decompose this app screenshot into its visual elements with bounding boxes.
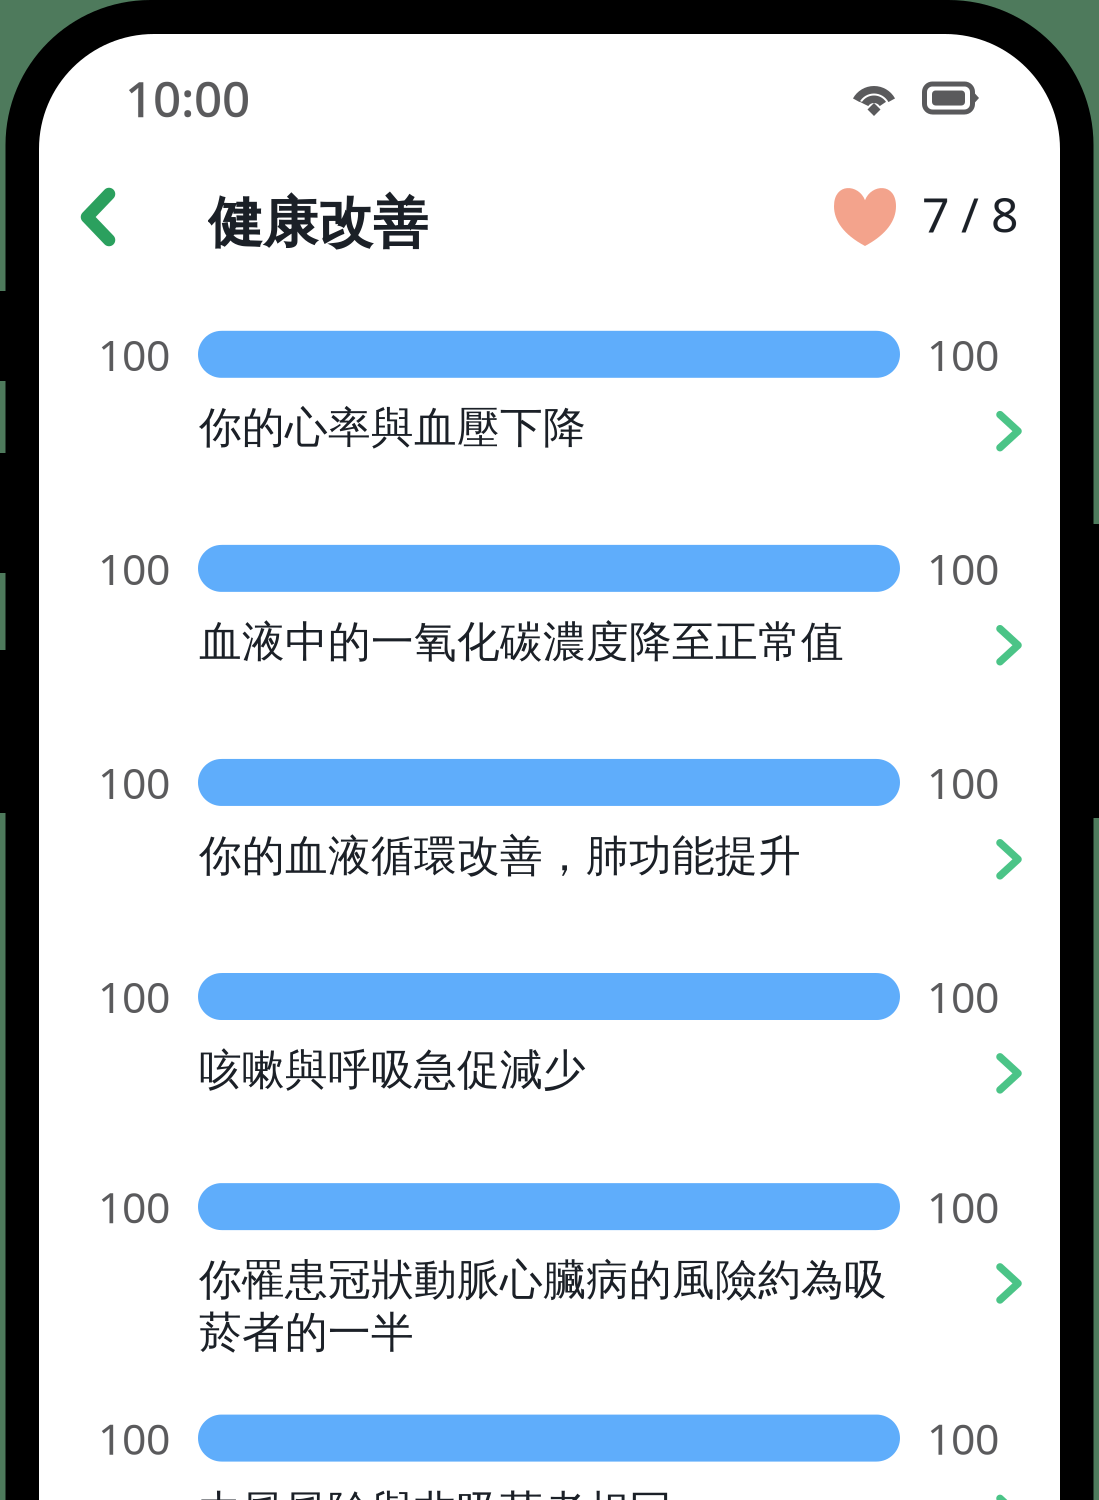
staticText: 100 xyxy=(927,968,999,1025)
staticText: 100 xyxy=(98,326,170,383)
staticText: 你的血液循環改善，肺功能提升 xyxy=(199,830,801,882)
staticText: 100 xyxy=(927,326,999,383)
staticText: 100 xyxy=(98,540,170,597)
staticText: 7 / 8 xyxy=(922,182,1018,246)
staticText: 健康改善 xyxy=(208,189,428,256)
button[interactable]: Back xyxy=(69,177,127,269)
staticText: 100 xyxy=(98,1178,170,1235)
staticText: 100 xyxy=(98,968,170,1025)
staticText: 10:00 xyxy=(125,65,250,131)
staticText: 你的心率與血壓下降 xyxy=(199,402,586,454)
staticText: 100 xyxy=(98,754,170,811)
staticText: 血液中的一氧化碳濃度降至正常值 xyxy=(199,616,844,668)
staticText: 100 xyxy=(98,1410,170,1466)
staticText: 100 xyxy=(927,540,999,597)
staticText: 你罹患冠狀動脈心臟病的風險約為吸菸者的一半 xyxy=(199,1254,887,1359)
staticText: 100 xyxy=(927,1410,999,1466)
staticText: 中風風險與非吸菸者相同 xyxy=(199,1485,672,1500)
staticText: 100 xyxy=(927,754,999,811)
staticText: 咳嗽與呼吸急促減少 xyxy=(199,1044,586,1096)
staticText: 100 xyxy=(927,1178,999,1235)
